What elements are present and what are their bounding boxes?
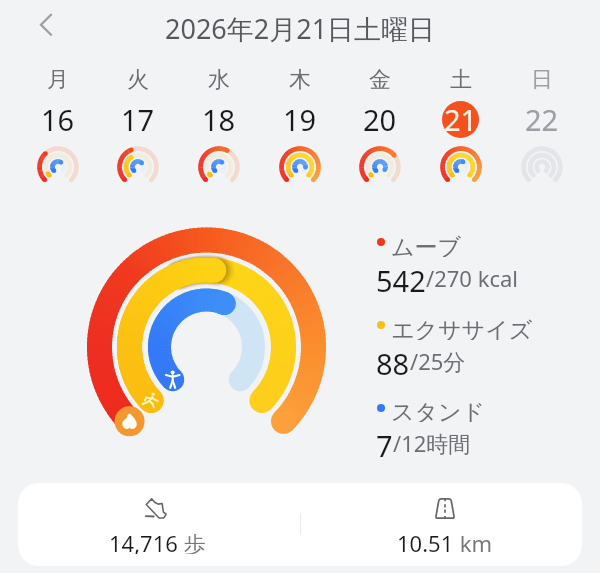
button[interactable] — [502, 58, 582, 190]
staticText: 木 — [289, 66, 311, 92]
staticText: 20 — [363, 100, 397, 133]
staticText: /25分 — [410, 346, 466, 376]
staticText: 88 — [376, 344, 410, 376]
staticText: 21 — [444, 100, 478, 133]
button[interactable] — [340, 58, 420, 190]
staticText: 水 — [208, 66, 230, 92]
staticText: 19 — [283, 100, 317, 133]
staticText: 18 — [202, 100, 236, 133]
staticText: エクササイズ — [391, 316, 533, 340]
staticText: 歩 — [178, 528, 206, 554]
staticText: 月 — [47, 66, 69, 92]
staticText: 542 — [376, 261, 426, 293]
button[interactable] — [421, 58, 501, 190]
staticText: 17 — [121, 100, 155, 133]
button[interactable] — [179, 58, 259, 190]
staticText: 土 — [450, 66, 472, 92]
button[interactable] — [260, 58, 340, 190]
button[interactable] — [18, 483, 300, 566]
staticText: 金 — [369, 66, 391, 92]
staticText: /270 kcal — [426, 263, 518, 293]
staticText: 火 — [127, 66, 149, 92]
staticText: 16 — [41, 100, 75, 133]
staticText: /12時間 — [393, 428, 471, 458]
staticText: 2026年2月21日土曜日 — [165, 10, 436, 47]
staticText: スタンド — [391, 398, 486, 422]
staticText: 14,716 — [109, 528, 178, 554]
staticText: 日 — [531, 66, 553, 92]
button[interactable] — [98, 58, 178, 190]
button[interactable]: Back — [24, 8, 58, 42]
staticText: ムーブ — [391, 233, 462, 257]
staticText: 10.51 — [397, 528, 454, 554]
button[interactable] — [18, 58, 98, 190]
staticText: km — [454, 528, 493, 554]
button[interactable] — [300, 483, 582, 566]
staticText: 7 — [376, 426, 393, 458]
staticText: 22 — [525, 100, 559, 133]
